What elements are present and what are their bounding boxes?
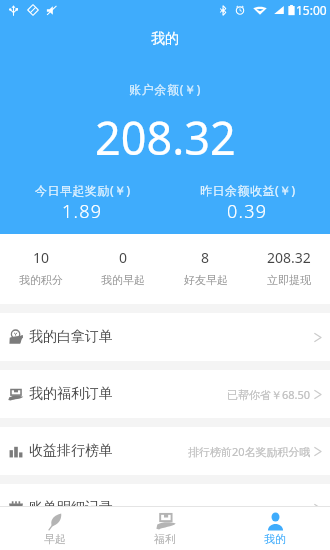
button[interactable]: 8 bbox=[164, 234, 247, 304]
staticText: 208.32 bbox=[95, 107, 236, 168]
staticText: 我的 bbox=[264, 532, 286, 546]
staticText: 我的积分 bbox=[19, 273, 63, 287]
staticText: 我的福利订单 bbox=[29, 385, 113, 403]
button[interactable]: 我的白拿订单 bbox=[0, 313, 330, 361]
staticText: 福利 bbox=[154, 532, 176, 546]
button[interactable]: 福利 bbox=[110, 507, 220, 550]
button[interactable]: 早起 bbox=[0, 507, 110, 550]
staticText: 我的 bbox=[151, 30, 179, 48]
staticText: 1.89 bbox=[62, 199, 103, 224]
staticText: 已帮你省￥68.50 bbox=[227, 387, 311, 402]
staticText: 我的早起 bbox=[101, 273, 145, 287]
staticText: 排行榜前20名奖励积分哦 bbox=[188, 444, 311, 459]
button[interactable]: 10 bbox=[0, 234, 82, 304]
button[interactable]: 我的福利订单 bbox=[0, 370, 330, 418]
staticText: 0 bbox=[119, 248, 128, 267]
staticText: 好友早起 bbox=[184, 273, 228, 287]
staticText: 账单明细记录 bbox=[29, 499, 113, 517]
staticText: 我的白拿订单 bbox=[29, 328, 113, 346]
button[interactable]: 0 bbox=[82, 234, 164, 304]
staticText: 0.39 bbox=[227, 199, 268, 224]
button[interactable]: 账单明细记录 bbox=[0, 484, 330, 532]
button[interactable]: 收益排行榜单 bbox=[0, 427, 330, 475]
button[interactable]: 208.32 bbox=[247, 234, 330, 304]
staticText: 10 bbox=[33, 248, 50, 267]
staticText: 15:00 bbox=[296, 2, 327, 18]
button[interactable]: 我的 bbox=[220, 507, 330, 550]
staticText: 立即提现 bbox=[267, 273, 311, 287]
staticText: 收益排行榜单 bbox=[29, 442, 113, 460]
staticText: 208.32 bbox=[267, 248, 311, 267]
staticText: 昨日余额收益(￥) bbox=[200, 182, 296, 198]
staticText: 账户余额(￥) bbox=[129, 81, 202, 97]
staticText: 早起 bbox=[44, 532, 66, 546]
staticText: 今日早起奖励(￥) bbox=[35, 182, 131, 198]
staticText: 8 bbox=[201, 248, 210, 267]
